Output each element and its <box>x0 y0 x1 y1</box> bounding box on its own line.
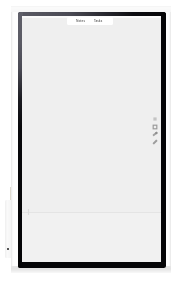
button[interactable]: Pen <box>152 139 158 145</box>
button[interactable]: Shape <box>152 124 158 130</box>
button[interactable]: Eraser <box>152 131 158 137</box>
button[interactable]: Notes <box>72 17 89 25</box>
staticText: Notes <box>76 19 85 23</box>
button[interactable]: Collapse panel <box>27 209 30 215</box>
button[interactable]: Tasks <box>90 17 107 25</box>
staticText: Tasks <box>94 19 103 23</box>
button[interactable]: Templates <box>152 116 158 122</box>
